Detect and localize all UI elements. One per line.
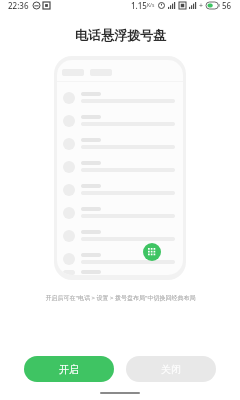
staticText: 关闭 [161,363,181,376]
staticText: + [199,1,204,11]
button[interactable]: 关闭 [126,356,216,382]
staticText: 开启后可在"电话 > 设置 > 拨号盘布局"中切换回经典布局 [45,294,196,302]
staticText: 56 [222,0,232,11]
button[interactable]: Dialpad [143,243,161,261]
button[interactable]: 开启 [24,356,114,382]
staticText: 1.15 [131,0,147,11]
staticText: 22:36 [8,0,29,11]
staticText: 开启 [59,363,79,376]
staticText: 电话悬浮拨号盘 [75,27,166,43]
staticText: K/s [147,2,155,9]
